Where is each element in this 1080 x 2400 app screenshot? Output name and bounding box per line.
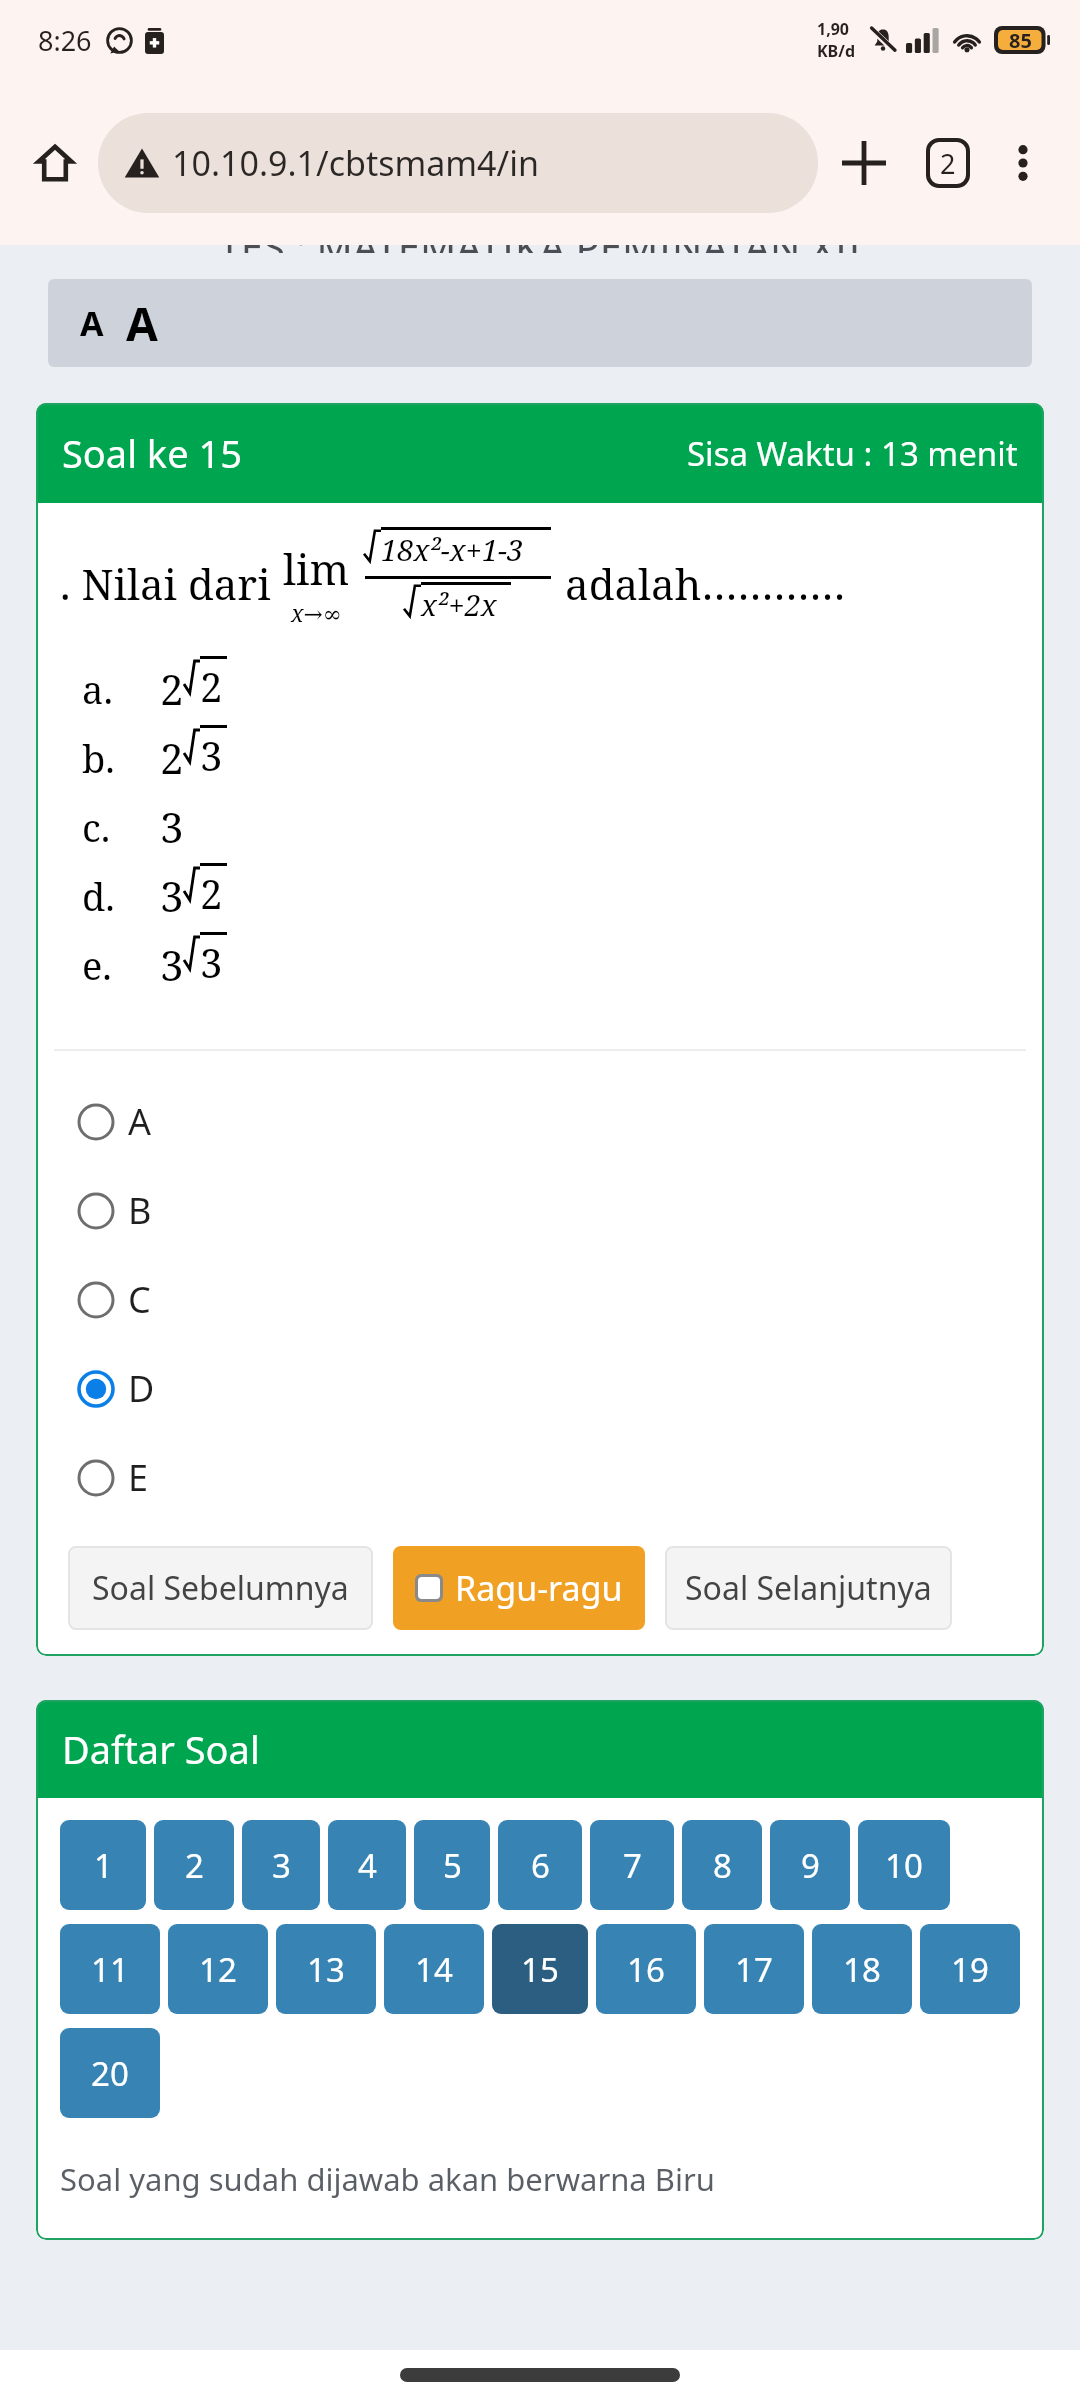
staticText: 3 xyxy=(272,1843,291,1888)
staticText: 3 xyxy=(160,867,184,924)
staticText: adalah………… xyxy=(565,555,846,612)
button[interactable]: A xyxy=(76,296,108,350)
button[interactable]: Soal Selanjutnya xyxy=(665,1546,952,1630)
button[interactable]: 9 xyxy=(770,1820,850,1910)
button[interactable]: 17 xyxy=(704,1924,804,2014)
button[interactable]: 1 xyxy=(60,1820,146,1910)
button[interactable]: 20 xyxy=(60,2028,160,2118)
staticText: B xyxy=(128,1186,152,1235)
button[interactable]: 8 xyxy=(682,1820,762,1910)
staticText: Soal Sebelumnya xyxy=(92,1566,349,1610)
button[interactable]: Ragu-ragu xyxy=(393,1546,645,1630)
staticText: 8 xyxy=(713,1843,732,1888)
button[interactable]: A xyxy=(122,288,162,359)
staticText: TES : MATEMATIKA PEMINATAN XII xyxy=(0,245,1080,253)
button[interactable]: New tab xyxy=(826,125,902,201)
staticText: 1,90 xyxy=(817,18,850,40)
button[interactable]: 5 xyxy=(414,1820,490,1910)
button[interactable]: 10.10.9.1/cbtsmam4/in xyxy=(98,113,818,213)
button[interactable]: Tabs, 2 open xyxy=(910,125,986,201)
button[interactable]: 16 xyxy=(596,1924,696,2014)
button[interactable]: 3 xyxy=(242,1820,320,1910)
staticText: 19 xyxy=(951,1947,989,1992)
staticText: c. xyxy=(82,801,111,853)
staticText: A xyxy=(80,300,104,346)
staticText: 3 xyxy=(160,936,184,993)
staticText: 3 xyxy=(160,798,184,855)
staticText: . Nilai dari xyxy=(60,555,271,612)
staticText: 2 xyxy=(200,866,223,920)
staticText: d. xyxy=(82,870,115,922)
staticText: 13 xyxy=(307,1947,345,1992)
staticText: lim xyxy=(283,540,350,597)
staticText: E xyxy=(128,1453,149,1502)
button[interactable]: B xyxy=(36,1174,1044,1247)
staticText: x→∞ xyxy=(291,597,342,628)
button[interactable]: 7 xyxy=(590,1820,674,1910)
staticText: 2 xyxy=(940,145,956,182)
staticText: 8:26 xyxy=(38,22,92,59)
button[interactable]: 4 xyxy=(328,1820,406,1910)
button[interactable]: 11 xyxy=(60,1924,160,2014)
staticText: 4 xyxy=(358,1843,377,1888)
button[interactable]: 18 xyxy=(812,1924,912,2014)
staticText: 15 xyxy=(521,1947,559,1992)
staticText: 17 xyxy=(735,1947,773,1992)
staticText: 9 xyxy=(801,1843,820,1888)
button[interactable]: D xyxy=(36,1352,1044,1425)
button[interactable]: Home xyxy=(24,132,86,194)
button[interactable]: A xyxy=(36,1085,1044,1158)
staticText: 12 xyxy=(199,1947,237,1992)
staticText: b. xyxy=(82,732,115,784)
staticText: KB/d xyxy=(817,40,856,62)
staticText: 3 xyxy=(200,935,223,989)
button[interactable]: 6 xyxy=(498,1820,582,1910)
staticText: 14 xyxy=(415,1947,453,1992)
staticText: 2 xyxy=(185,1843,204,1888)
staticText: 2 xyxy=(160,660,184,717)
button[interactable]: 10 xyxy=(858,1820,950,1910)
staticText: x²+2x xyxy=(421,585,497,624)
staticText: 85 xyxy=(1009,27,1032,54)
staticText: Soal yang sudah dijawab akan berwarna Bi… xyxy=(60,2158,715,2200)
staticText: e. xyxy=(82,939,112,991)
staticText: 7 xyxy=(623,1843,642,1888)
button[interactable]: More options xyxy=(990,130,1056,196)
staticText: D xyxy=(128,1364,155,1413)
staticText: 6 xyxy=(531,1843,550,1888)
staticText: Sisa Waktu : 13 menit xyxy=(687,431,1018,476)
staticText: 18 xyxy=(843,1947,881,1992)
staticText: 2 xyxy=(160,729,184,786)
staticText: 2 xyxy=(200,659,223,713)
staticText: Soal Selanjutnya xyxy=(685,1566,932,1610)
staticText: A xyxy=(128,1097,152,1146)
button[interactable]: E xyxy=(36,1441,1044,1514)
button[interactable]: 2 xyxy=(154,1820,234,1910)
staticText: Daftar Soal xyxy=(62,1723,260,1775)
button[interactable]: 19 xyxy=(920,1924,1020,2014)
staticText: a. xyxy=(82,663,113,715)
button[interactable]: 14 xyxy=(384,1924,484,2014)
staticText: 1 xyxy=(94,1843,113,1888)
staticText: 16 xyxy=(627,1947,665,1992)
staticText: 11 xyxy=(91,1947,129,1992)
staticText: 3 xyxy=(200,728,223,782)
staticText: A xyxy=(126,292,158,355)
button[interactable]: 13 xyxy=(276,1924,376,2014)
staticText: 20 xyxy=(91,2051,129,2096)
staticText: Ragu-ragu xyxy=(455,1565,623,1611)
staticText: 10.10.9.1/cbtsmam4/in xyxy=(172,140,539,186)
button[interactable]: C xyxy=(36,1263,1044,1336)
button[interactable]: 12 xyxy=(168,1924,268,2014)
staticText: C xyxy=(128,1275,151,1324)
staticText: Soal ke 15 xyxy=(62,427,242,479)
button[interactable]: 15 xyxy=(492,1924,588,2014)
staticText: 5 xyxy=(443,1843,462,1888)
staticText: 18x²−x+1−3 xyxy=(381,530,524,569)
staticText: 10 xyxy=(885,1843,923,1888)
button[interactable]: Soal Sebelumnya xyxy=(68,1546,373,1630)
